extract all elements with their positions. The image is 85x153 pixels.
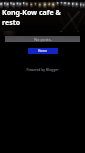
button[interactable]: Home [28,48,58,54]
staticText: Kong-Kow cafe & [2,8,61,18]
staticText: Home [38,49,48,53]
staticText: resto [2,18,21,28]
staticText: No posts. [34,37,52,42]
staticText: Powered by Blogger [26,67,59,72]
